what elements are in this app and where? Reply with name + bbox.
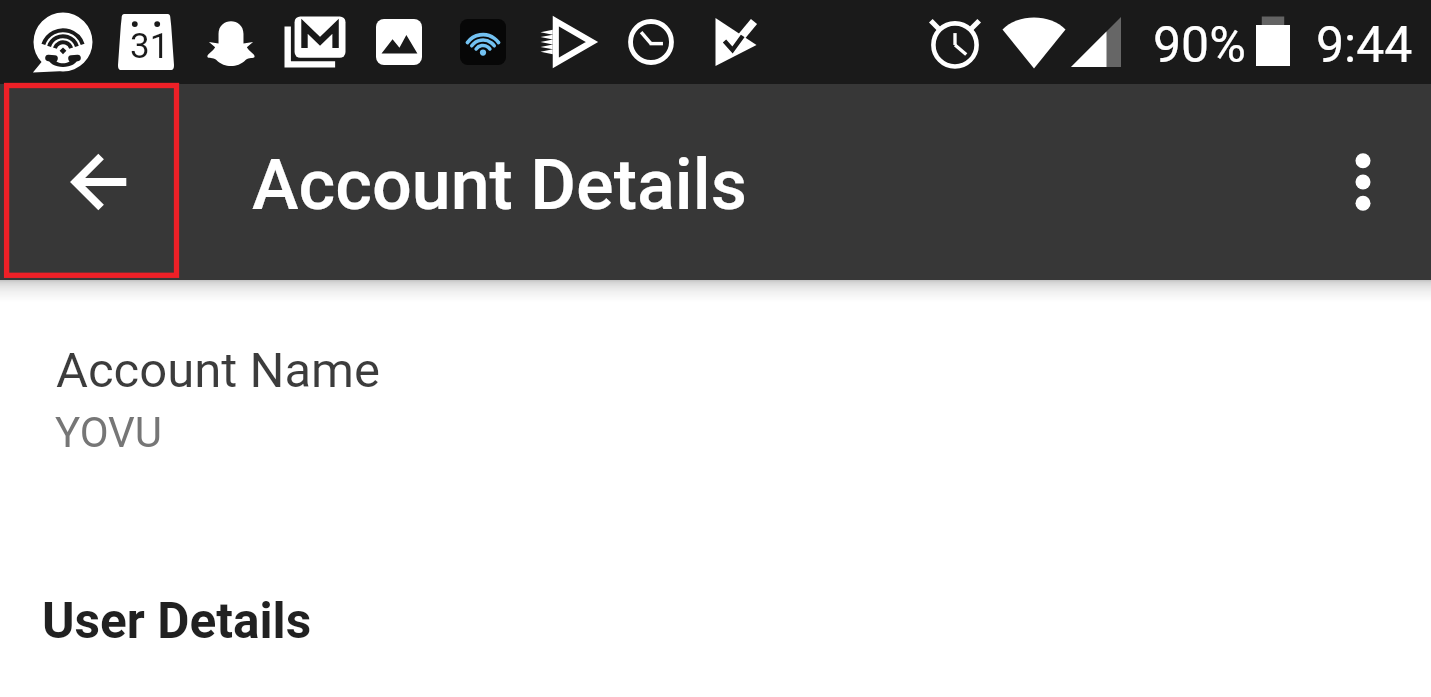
staticText: User Details [42, 592, 312, 650]
staticText: 9:44 [1316, 16, 1413, 75]
staticText: Account Details [252, 144, 747, 226]
button[interactable]: Account Name [0, 306, 1431, 474]
staticText: Account Name [56, 342, 381, 399]
button[interactable]: More options [1295, 84, 1431, 280]
button[interactable]: Navigate up [0, 84, 180, 280]
staticText: YOVU [55, 408, 163, 457]
staticText: 90% [1153, 16, 1246, 75]
staticText: 31 [130, 26, 170, 67]
